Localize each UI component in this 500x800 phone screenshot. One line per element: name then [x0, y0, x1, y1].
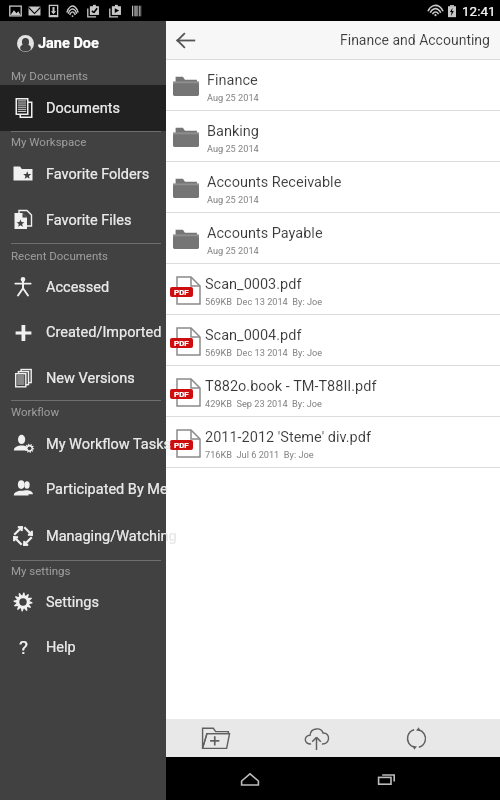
staticText: Aug 25 2014	[207, 92, 259, 103]
staticText: Accounts Payable	[207, 225, 323, 242]
staticText: T882o.book - TM-T88II.pdf	[205, 378, 377, 395]
button[interactable]: Documents	[0, 85, 166, 131]
button[interactable]: Sync	[366, 719, 466, 757]
staticText: Created/Imported	[46, 324, 162, 341]
staticText: ?	[19, 636, 28, 658]
staticText: 716KB Jul 6 2011 By: Joe	[205, 449, 314, 460]
staticText: My Workspace	[11, 135, 87, 148]
staticText: Accessed	[46, 279, 110, 296]
staticText: New Versions	[46, 370, 135, 387]
button[interactable]: Managing/Watching	[0, 512, 166, 560]
staticText: Help	[46, 639, 76, 656]
staticText: PDF	[174, 288, 189, 297]
staticText: My settings	[11, 564, 71, 577]
staticText: Favorite Files	[46, 212, 132, 229]
button[interactable]: Banking	[166, 111, 500, 162]
button[interactable]: Back	[166, 21, 204, 59]
button[interactable]: Accounts Receivable	[166, 162, 500, 213]
button[interactable]: Created/Imported	[0, 309, 166, 356]
button[interactable]: PDF	[166, 264, 500, 315]
staticText: Participated By Me	[46, 481, 166, 498]
staticText: Aug 25 2014	[207, 245, 259, 256]
button[interactable]: My Workflow Tasks	[0, 422, 166, 466]
button[interactable]: Home	[226, 757, 274, 800]
staticText: My Documents	[11, 69, 89, 82]
staticText: Accounts Receivable	[207, 174, 342, 191]
staticText: Managing/Watching	[46, 528, 166, 545]
staticText: Recent Documents	[11, 249, 108, 262]
button[interactable]: New Versions	[0, 356, 166, 400]
staticText: 12:41	[462, 3, 496, 19]
staticText: 569KB Dec 13 2014 By: Joe	[205, 296, 323, 307]
staticText: Banking	[207, 123, 259, 140]
staticText: Finance	[207, 72, 258, 89]
button[interactable]: Recents	[363, 757, 411, 800]
button[interactable]: PDF	[166, 417, 500, 468]
button[interactable]: Favorite Files	[0, 197, 166, 243]
staticText: Scan_0004.pdf	[205, 327, 302, 344]
staticText: Aug 25 2014	[207, 143, 259, 154]
button[interactable]: PDF	[166, 315, 500, 366]
staticText: PDF	[174, 441, 189, 450]
staticText: Jane Doe	[38, 35, 99, 52]
staticText: Workflow	[11, 405, 60, 418]
staticText: Documents	[46, 100, 121, 117]
button[interactable]: Participated By Me	[0, 466, 166, 512]
staticText: 569KB Dec 13 2014 By: Joe	[205, 347, 323, 358]
staticText: Scan_0003.pdf	[205, 276, 302, 293]
staticText: Favorite Folders	[46, 166, 150, 183]
button[interactable]: Favorite Folders	[0, 151, 166, 197]
staticText: PDF	[174, 339, 189, 348]
staticText: My Workflow Tasks	[46, 436, 166, 453]
button[interactable]: Finance	[166, 60, 500, 111]
staticText: Aug 25 2014	[207, 194, 259, 205]
button[interactable]: Jane Doe	[0, 21, 166, 66]
button[interactable]: New folder	[166, 719, 266, 757]
staticText: Settings	[46, 594, 99, 611]
button[interactable]: Settings	[0, 580, 166, 624]
button[interactable]: Accessed	[0, 265, 166, 309]
staticText: PDF	[174, 390, 189, 399]
staticText: 2011-2012 'Steme' div.pdf	[205, 429, 371, 446]
button[interactable]: Accounts Payable	[166, 213, 500, 264]
staticText: Finance and Accounting	[340, 32, 490, 48]
button[interactable]: Upload	[266, 719, 366, 757]
button[interactable]: ?	[0, 624, 166, 670]
staticText: 429KB Sep 23 2014 By: Joe	[205, 398, 322, 409]
button[interactable]: PDF	[166, 366, 500, 417]
